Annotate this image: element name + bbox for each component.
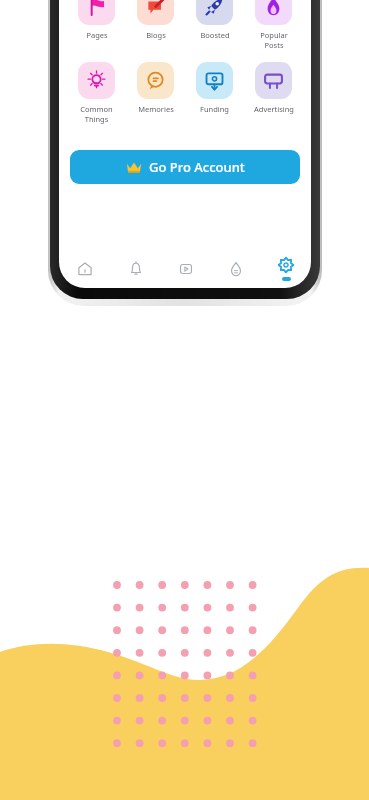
- button[interactable]: Notifications: [110, 254, 161, 284]
- staticText: Blogs: [146, 30, 166, 40]
- staticText: Boosted: [200, 30, 230, 40]
- button[interactable]: Videos: [161, 254, 211, 284]
- button[interactable]: Pages: [67, 0, 126, 40]
- staticText: Popular Posts: [260, 30, 288, 50]
- button[interactable]: Trending: [211, 254, 261, 284]
- button[interactable]: Go Pro Account: [70, 150, 300, 184]
- button[interactable]: Home: [59, 254, 110, 284]
- button[interactable]: Settings: [261, 254, 311, 284]
- staticText: Advertising: [254, 104, 294, 114]
- button[interactable]: Memories: [126, 62, 185, 114]
- button[interactable]: Boosted: [185, 0, 244, 40]
- button[interactable]: Funding: [185, 62, 244, 114]
- staticText: Common Things: [80, 104, 113, 124]
- staticText: Funding: [200, 104, 229, 114]
- staticText: Memories: [138, 104, 174, 114]
- staticText: Pages: [86, 30, 108, 40]
- button[interactable]: Common Things: [67, 62, 126, 124]
- button[interactable]: Advertising: [244, 62, 303, 114]
- button[interactable]: Popular Posts: [244, 0, 303, 50]
- button[interactable]: Blogs: [126, 0, 185, 40]
- staticText: Go Pro Account: [149, 158, 245, 176]
